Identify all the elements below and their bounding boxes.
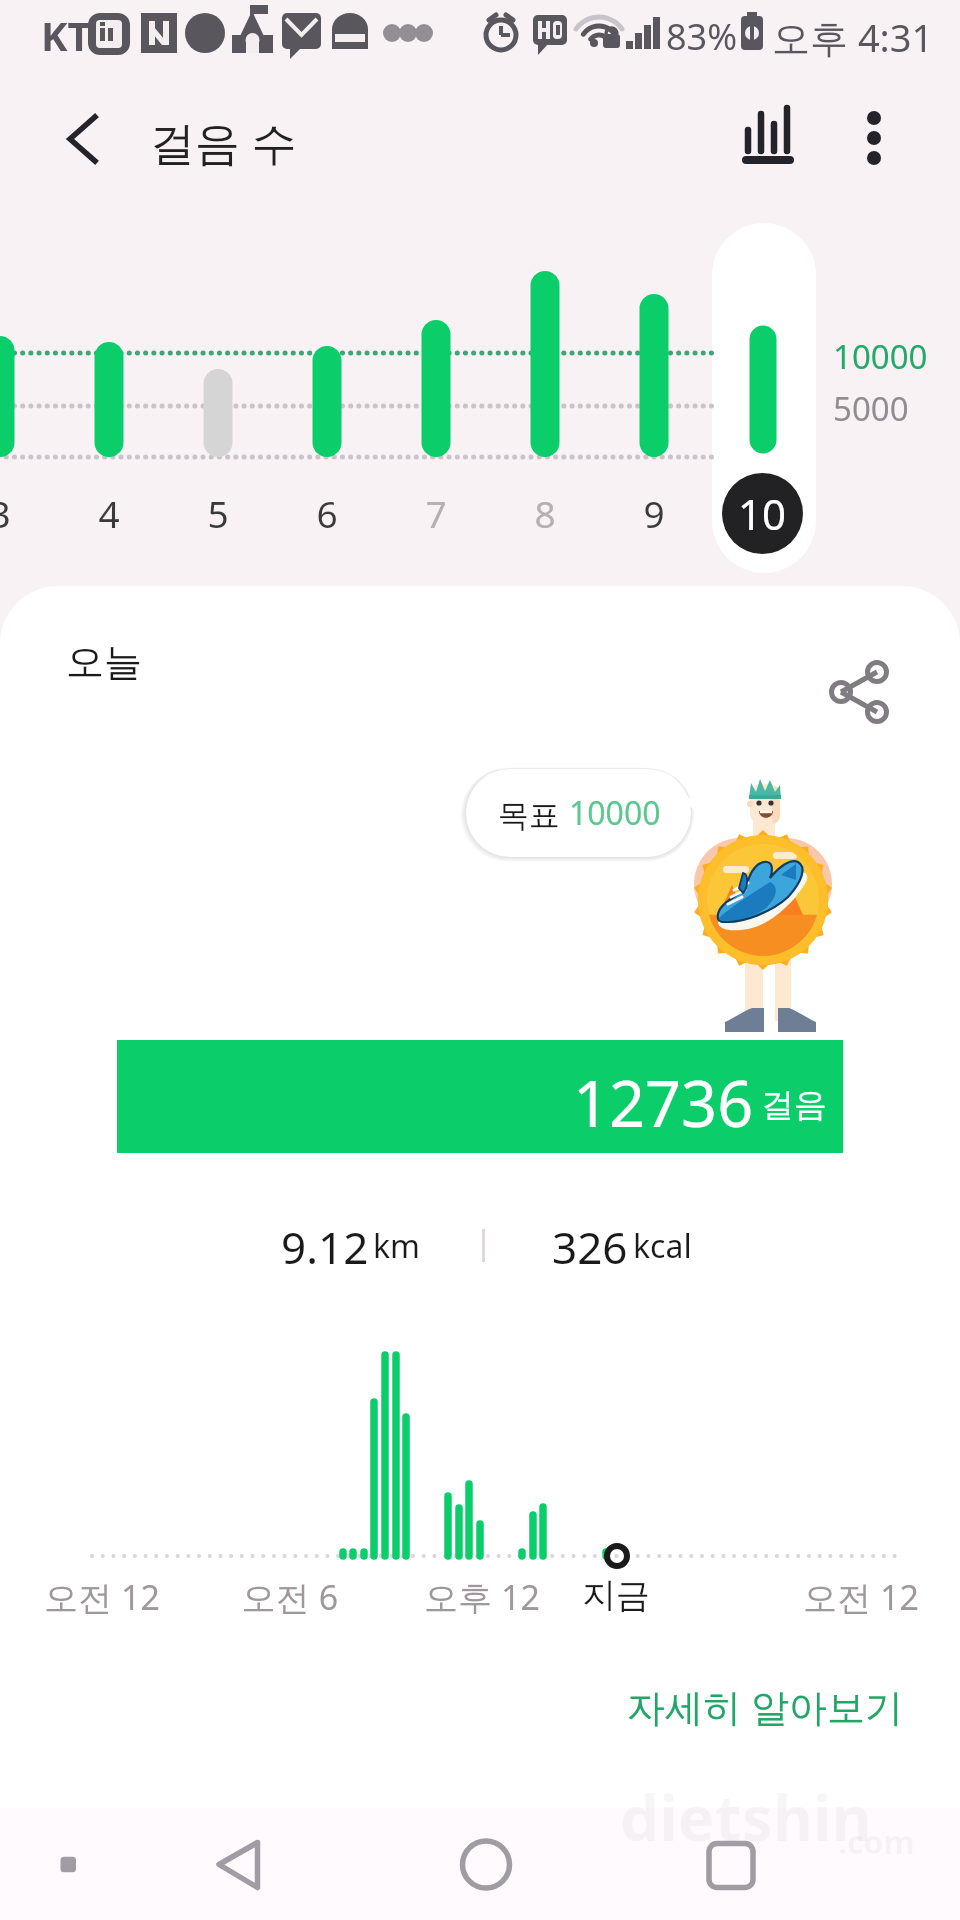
staticText: 오전 6 (190, 1574, 390, 1620)
button[interactable]: 자세히 알아보기 (605, 1670, 925, 1742)
staticText: 오후 4:31 (772, 11, 934, 63)
button[interactable]: 10 (722, 473, 803, 554)
button[interactable]: More options (830, 94, 918, 186)
button[interactable] (117, 1040, 843, 1153)
staticText: 10000 (569, 791, 661, 835)
staticText: 83% (666, 12, 738, 61)
staticText: 326 (552, 1217, 628, 1277)
staticText: 오늘 (66, 638, 142, 686)
button[interactable]: Statistics (722, 94, 818, 186)
staticText: 10000 (833, 334, 928, 379)
staticText: KT (41, 8, 91, 62)
button[interactable]: Recent apps indicator (20, 1808, 193, 1920)
staticText: 목표 (498, 793, 569, 835)
staticText: 9.12 (281, 1217, 369, 1277)
button[interactable]: Back (46, 104, 118, 176)
staticText: km (373, 1224, 421, 1268)
staticText: kcal (633, 1224, 692, 1268)
staticText: dietshin (620, 1775, 872, 1859)
staticText: 오전 12 (761, 1574, 960, 1620)
staticText: 걸음 수 (150, 111, 297, 172)
staticText: 3 (0, 488, 40, 538)
staticText: 10 (738, 485, 787, 542)
staticText: 4 (69, 488, 149, 538)
staticText: 8 (505, 488, 585, 538)
staticText: 오전 12 (2, 1574, 202, 1620)
button[interactable]: Recent apps (675, 1808, 787, 1920)
button[interactable]: Share (819, 646, 899, 726)
staticText: 걸음 (761, 1084, 827, 1126)
button[interactable]: Home (430, 1808, 542, 1920)
staticText: 5000 (833, 386, 909, 431)
staticText: 지금 (516, 1574, 716, 1617)
staticText: 9 (614, 488, 694, 538)
staticText: 7 (396, 488, 476, 538)
button[interactable]: Back (190, 1808, 300, 1920)
staticText: 오후 12 (382, 1574, 582, 1620)
staticText: 5 (178, 488, 258, 538)
staticText: .com (838, 1820, 915, 1864)
staticText: 자세히 알아보기 (627, 1680, 903, 1732)
staticText: 6 (287, 488, 367, 538)
button[interactable] (712, 223, 816, 573)
staticText: 12736 (573, 1060, 754, 1146)
